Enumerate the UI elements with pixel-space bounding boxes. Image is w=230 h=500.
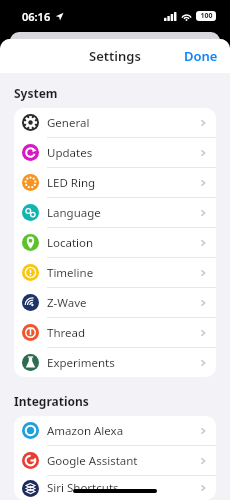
button[interactable]: Experiments <box>14 348 216 377</box>
button[interactable]: General <box>14 108 216 137</box>
button[interactable]: Thread <box>14 318 216 347</box>
staticText: Integrations <box>14 393 89 409</box>
staticText: LED Ring <box>47 175 96 191</box>
button[interactable]: Location <box>14 228 216 257</box>
staticText: System <box>14 85 58 101</box>
staticText: Amazon Alexa <box>47 423 124 439</box>
button[interactable]: Done <box>172 41 230 71</box>
button[interactable]: Siri Shortcuts <box>14 476 216 500</box>
staticText: Updates <box>47 145 93 161</box>
button[interactable]: Google Assistant <box>14 446 216 475</box>
staticText: General <box>47 115 90 131</box>
button[interactable]: Timeline <box>14 258 216 287</box>
button[interactable]: LED Ring <box>14 168 216 197</box>
button[interactable]: Updates <box>14 138 216 167</box>
staticText: Language <box>47 205 101 221</box>
staticText: Timeline <box>47 265 94 281</box>
staticText: Location <box>47 235 94 251</box>
staticText: Z-Wave <box>47 295 87 311</box>
staticText: 100 <box>200 11 213 21</box>
staticText: Done <box>184 47 218 65</box>
staticText: Siri Shortcuts <box>47 480 119 496</box>
staticText: 06:16 <box>22 9 51 24</box>
staticText: Thread <box>47 325 86 341</box>
button[interactable]: Language <box>14 198 216 227</box>
button[interactable]: Amazon Alexa <box>14 416 216 445</box>
staticText: Google Assistant <box>47 453 138 469</box>
button[interactable]: Z-Wave <box>14 288 216 317</box>
staticText: Settings <box>89 47 141 65</box>
staticText: Experiments <box>47 355 115 371</box>
